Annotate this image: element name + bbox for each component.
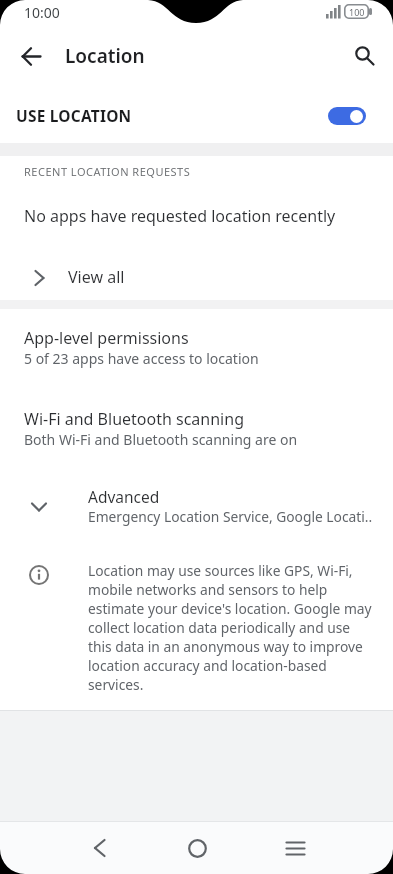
staticText: App-level permissions — [24, 327, 189, 349]
staticText: No apps have requested location recently — [24, 205, 336, 227]
staticText: Location may use sources like GPS, Wi-Fi… — [88, 561, 372, 694]
button[interactable]: Wi-Fi and Bluetooth scanning — [0, 399, 393, 463]
staticText: Both Wi-Fi and Bluetooth scanning are on — [24, 430, 298, 449]
staticText: 5 of 23 apps have access to location — [24, 349, 259, 368]
button[interactable] — [164, 822, 230, 874]
button[interactable]: View all — [0, 256, 393, 300]
button[interactable] — [14, 40, 48, 72]
button[interactable]: App-level permissions — [0, 318, 393, 382]
staticText: RECENT LOCATION REQUESTS — [24, 164, 191, 179]
button[interactable]: USE LOCATION — [0, 88, 393, 143]
button[interactable] — [262, 822, 328, 874]
staticText: View all — [68, 266, 125, 288]
staticText: Advanced — [88, 486, 160, 507]
staticText: Location — [65, 43, 145, 69]
staticText: USE LOCATION — [16, 105, 132, 126]
staticText: 10:00 — [24, 3, 60, 22]
staticText: 100 — [349, 6, 365, 18]
staticText: Wi-Fi and Bluetooth scanning — [24, 408, 244, 430]
button[interactable] — [348, 40, 382, 72]
button[interactable]: Advanced — [0, 478, 393, 538]
staticText: Emergency Location Service, Google Locat… — [88, 507, 373, 526]
button[interactable] — [66, 822, 132, 874]
